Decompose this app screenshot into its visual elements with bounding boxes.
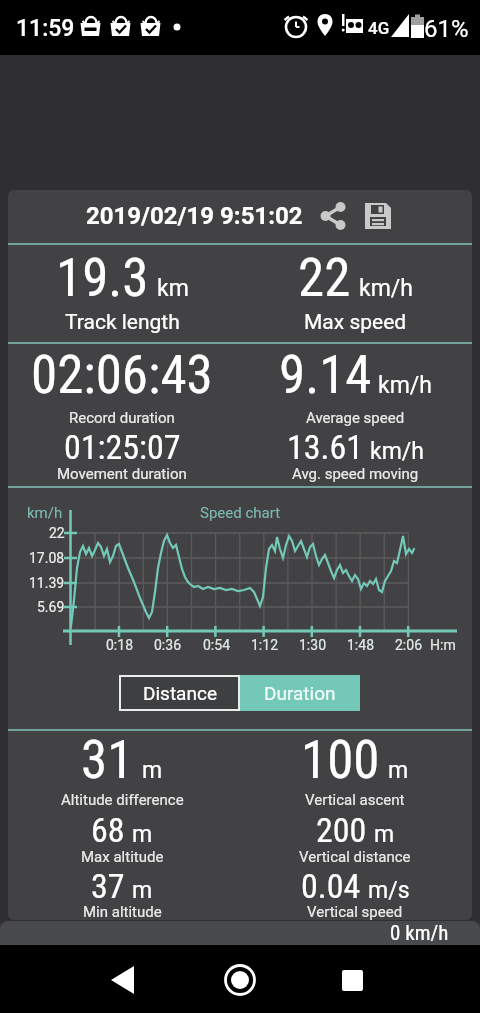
staticText: m bbox=[142, 757, 163, 784]
staticText: 5.69 bbox=[37, 599, 65, 615]
staticText: 22 bbox=[49, 525, 65, 541]
staticText: 68 bbox=[91, 810, 125, 850]
staticText: m bbox=[132, 821, 153, 848]
staticText: 17.08 bbox=[29, 550, 65, 566]
staticText: Altitude difference bbox=[61, 791, 184, 809]
staticText: m/s bbox=[368, 877, 410, 904]
staticText: Duration bbox=[264, 682, 336, 704]
button[interactable] bbox=[318, 201, 348, 231]
staticText: Min altitude bbox=[83, 903, 162, 921]
staticText: 200 bbox=[316, 810, 367, 850]
staticText: km bbox=[157, 275, 189, 302]
staticText: 4G bbox=[368, 18, 390, 38]
staticText: m bbox=[132, 877, 153, 904]
staticText: 19.3 bbox=[56, 247, 149, 309]
staticText: Track length bbox=[65, 310, 180, 335]
staticText: 0:36 bbox=[154, 637, 181, 653]
staticText: 11.39 bbox=[29, 575, 65, 591]
staticText: 2019/02/19 9:51:02 bbox=[86, 202, 303, 230]
staticText: 22 bbox=[298, 247, 351, 309]
staticText: 13.61 bbox=[287, 427, 364, 467]
button[interactable] bbox=[362, 200, 394, 232]
staticText: Avg. speed moving bbox=[292, 465, 419, 483]
staticText: Average speed bbox=[306, 409, 405, 427]
staticText: 100 bbox=[301, 729, 380, 791]
staticText: 2:06 bbox=[395, 637, 422, 653]
staticText: 1:12 bbox=[251, 637, 278, 653]
staticText: 1:48 bbox=[347, 637, 374, 653]
staticText: 0:54 bbox=[203, 637, 230, 653]
button[interactable]: Distance bbox=[119, 675, 240, 711]
staticText: Distance bbox=[143, 682, 217, 704]
staticText: 61% bbox=[424, 15, 469, 43]
staticText: Speed chart bbox=[200, 504, 281, 522]
staticText: m bbox=[388, 757, 409, 784]
staticText: m bbox=[374, 821, 395, 848]
staticText: Record duration bbox=[69, 409, 175, 427]
staticText: 1:30 bbox=[299, 637, 326, 653]
button[interactable] bbox=[332, 960, 372, 1000]
staticText: 11:59 bbox=[16, 15, 75, 42]
staticText: H:m bbox=[430, 637, 456, 653]
staticText: Vertical ascent bbox=[305, 791, 405, 809]
staticText: km/h bbox=[359, 275, 413, 302]
staticText: Vertical distance bbox=[299, 848, 411, 866]
staticText: 9.14 bbox=[279, 344, 372, 406]
staticText: 37 bbox=[91, 866, 125, 906]
staticText: 0 km/h bbox=[390, 921, 449, 945]
staticText: 31 bbox=[81, 729, 134, 791]
staticText: km/h bbox=[27, 504, 63, 522]
staticText: Max speed bbox=[304, 310, 407, 335]
staticText: 01:25:07 bbox=[64, 427, 181, 467]
staticText: km/h bbox=[370, 438, 424, 465]
staticText: km/h bbox=[378, 372, 432, 399]
staticText: Movement duration bbox=[57, 465, 187, 483]
staticText: Max altitude bbox=[81, 848, 164, 866]
button[interactable]: Duration bbox=[240, 675, 360, 711]
staticText: 0.04 bbox=[301, 866, 361, 906]
staticText: 0:18 bbox=[106, 637, 133, 653]
button[interactable] bbox=[103, 960, 143, 1000]
staticText: 02:06:43 bbox=[31, 344, 213, 406]
staticText: Vertical speed bbox=[307, 903, 403, 921]
button[interactable] bbox=[220, 960, 260, 1000]
